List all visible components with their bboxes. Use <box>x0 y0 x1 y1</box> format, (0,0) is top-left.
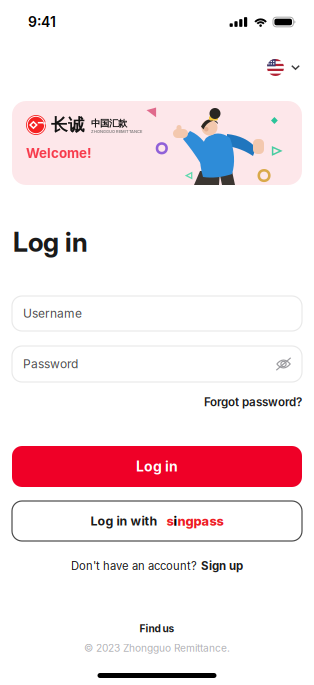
staticText: 中国汇款 <box>91 117 127 129</box>
staticText: Log in <box>136 458 178 475</box>
staticText: Password <box>23 357 78 371</box>
staticText: © 2023 Zhongguo Remittance. <box>84 642 230 654</box>
staticText: Sign up <box>201 559 243 573</box>
button[interactable]: Log in <box>12 446 302 487</box>
staticText: Don't have an account? <box>71 559 197 573</box>
staticText: s <box>166 513 173 529</box>
staticText: Username <box>23 306 82 321</box>
button[interactable]: Don't have an account? <box>71 559 243 573</box>
staticText: Log in with <box>90 513 157 528</box>
button[interactable]: Forgot password? <box>204 395 302 409</box>
button[interactable]: Show password <box>272 353 295 374</box>
staticText: Welcome! <box>26 145 92 161</box>
staticText: 9:41 <box>28 13 56 30</box>
staticText: Log in <box>13 226 88 258</box>
staticText: ngpass <box>177 513 223 529</box>
staticText: Find us <box>139 622 174 635</box>
staticText: Forgot password? <box>204 395 302 409</box>
button[interactable]: Find us <box>139 624 174 633</box>
staticText: ZHONGGUO REMITTANCE <box>91 129 142 134</box>
button[interactable]: Select language <box>265 56 302 89</box>
button[interactable]: Log in with <box>12 501 302 541</box>
staticText: i <box>173 513 177 529</box>
staticText: 长诚 <box>51 114 85 135</box>
